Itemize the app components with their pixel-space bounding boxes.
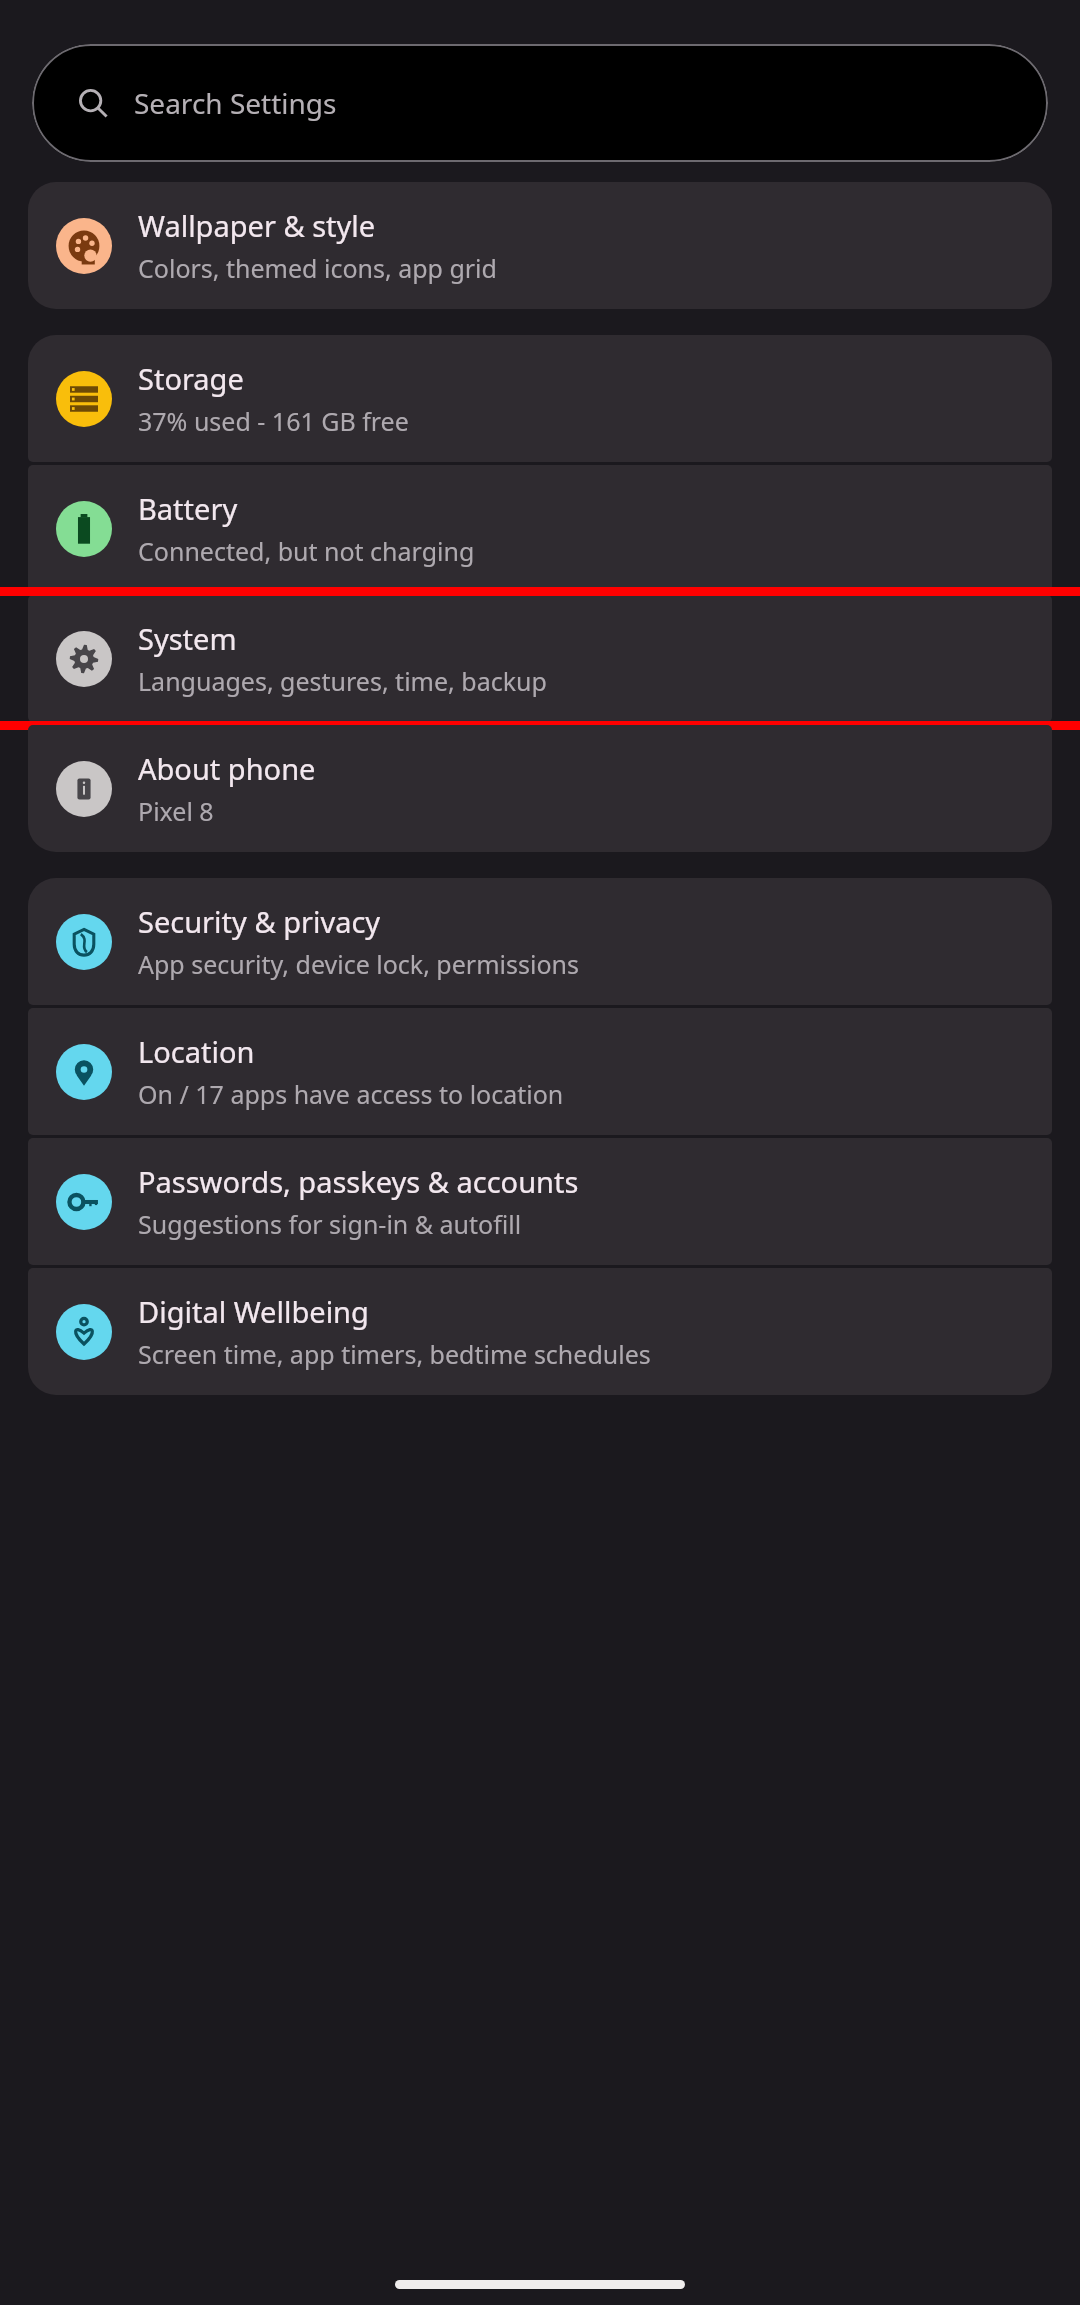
staticText: About phone (138, 749, 316, 788)
button[interactable]: Location (28, 1008, 1052, 1135)
staticText: Security & privacy (138, 902, 381, 941)
staticText: Pixel 8 (138, 794, 214, 828)
staticText: Location (138, 1032, 255, 1071)
staticText: 37% used - 161 GB free (138, 404, 409, 438)
other: Digital Wellbeing (56, 1304, 112, 1360)
other: Location (56, 1044, 112, 1100)
button[interactable]: Digital Wellbeing (28, 1268, 1052, 1395)
staticText: Languages, gestures, time, backup (138, 664, 547, 698)
staticText: Digital Wellbeing (138, 1292, 369, 1331)
staticText: App security, device lock, permissions (138, 947, 579, 981)
button[interactable]: Storage (28, 335, 1052, 462)
staticText: Suggestions for sign-in & autofill (138, 1207, 522, 1241)
button[interactable]: Search Settings (32, 44, 1048, 162)
button[interactable]: Security and privacy (28, 878, 1052, 1005)
staticText: System (138, 619, 237, 658)
button[interactable]: About phone (28, 725, 1052, 852)
staticText: Connected, but not charging (138, 534, 475, 568)
other: Passwords, passkeys and accounts (56, 1174, 112, 1230)
other: System (56, 631, 112, 687)
staticText: Search Settings (134, 84, 337, 122)
other: Battery (56, 501, 112, 557)
other: Wallpaper and style (56, 218, 112, 274)
staticText: Battery (138, 489, 238, 528)
button[interactable]: Passwords, passkeys and accounts (28, 1138, 1052, 1265)
other: Security and privacy (56, 914, 112, 970)
staticText: Screen time, app timers, bedtime schedul… (138, 1337, 651, 1371)
staticText: Passwords, passkeys & accounts (138, 1162, 579, 1201)
button[interactable]: Battery (28, 465, 1052, 592)
other: Storage (56, 371, 112, 427)
button[interactable]: Wallpaper and style (28, 182, 1052, 309)
staticText: Colors, themed icons, app grid (138, 251, 497, 285)
button[interactable]: System (28, 595, 1052, 722)
staticText: On / 17 apps have access to location (138, 1077, 564, 1111)
staticText: Storage (138, 359, 244, 398)
other: About phone (56, 761, 112, 817)
staticText: Wallpaper & style (138, 206, 376, 245)
